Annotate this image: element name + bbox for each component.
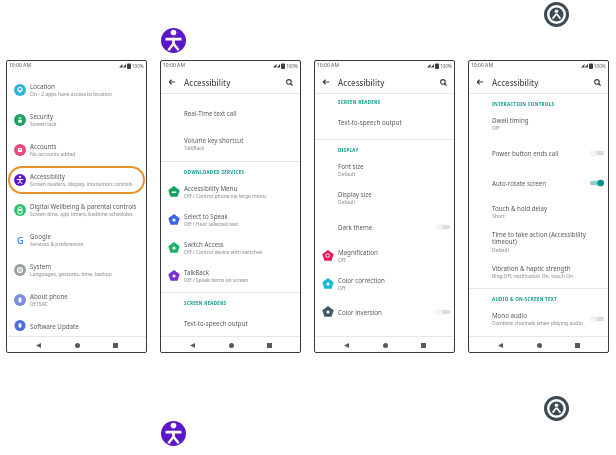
button[interactable]: Touch & hold delay <box>468 198 609 226</box>
button[interactable]: Accessibility <box>161 28 186 53</box>
staticText: 100% <box>132 63 144 69</box>
staticText: TalkBack <box>184 145 205 152</box>
button[interactable]: Mono audio <box>468 305 609 333</box>
staticText: Dark theme <box>338 223 373 231</box>
button[interactable]: Time to take action (Accessibility timeo… <box>468 226 609 258</box>
staticText: Location <box>30 82 55 90</box>
button[interactable]: Back <box>493 338 507 352</box>
button[interactable]: Accessibility <box>544 2 569 27</box>
button[interactable]: Back <box>473 75 487 89</box>
button[interactable]: Select to Speak <box>160 206 301 234</box>
staticText: G <box>17 234 24 246</box>
button[interactable]: TalkBack <box>160 262 301 290</box>
button[interactable]: Software Update <box>6 315 147 336</box>
button[interactable]: Search <box>590 75 604 89</box>
staticText: SCREEN READERS <box>338 99 455 105</box>
button[interactable]: Accounts <box>6 135 147 165</box>
staticText: Accessibility Menu <box>184 184 238 192</box>
button[interactable]: About phone <box>6 285 147 315</box>
staticText: Magnification <box>338 248 378 256</box>
staticText: Real-Time text call <box>184 109 237 117</box>
button[interactable]: Home <box>70 338 84 352</box>
button[interactable]: Location <box>6 75 147 105</box>
staticText: Off / Control phone via large menu <box>184 193 266 200</box>
button[interactable]: Accessibility <box>6 165 147 195</box>
staticText: Accessibility <box>184 77 231 88</box>
staticText: Short <box>492 213 505 220</box>
button[interactable]: G <box>6 225 147 255</box>
staticText: Services & preferences <box>30 241 84 248</box>
button[interactable]: Vibration & haptic strength <box>468 258 609 286</box>
button[interactable]: Search <box>282 75 296 89</box>
staticText: Off <box>492 125 500 132</box>
button[interactable]: Recents <box>416 338 430 352</box>
staticText: Mono audio <box>492 311 527 319</box>
staticText: Screen readers, display, interaction con… <box>30 181 133 188</box>
staticText: 0315AC <box>30 301 48 308</box>
button[interactable]: Back <box>319 75 333 89</box>
button[interactable]: Magnification <box>314 242 455 270</box>
button[interactable]: Home <box>378 338 392 352</box>
button[interactable]: Text-to-speech output <box>160 309 301 336</box>
button[interactable]: Back <box>31 338 45 352</box>
button[interactable]: Digital Wellbeing & parental controls <box>6 195 147 225</box>
button[interactable]: Back <box>185 338 199 352</box>
button[interactable]: Recents <box>262 338 276 352</box>
staticText: 100% <box>286 63 298 69</box>
button[interactable]: Home <box>224 338 238 352</box>
staticText: INTERACTION CONTROLS <box>492 101 609 107</box>
staticText: Time to take action (Accessibility timeo… <box>492 230 604 246</box>
staticText: 10:00 AM <box>471 62 493 69</box>
button[interactable]: Accessibility <box>544 396 569 421</box>
button[interactable]: Auto-rotate screen <box>468 168 609 198</box>
button[interactable]: Recents <box>570 338 584 352</box>
staticText: TalkBack <box>184 268 210 276</box>
staticText: Accessibility <box>492 77 539 88</box>
button[interactable]: Color inversion <box>314 298 455 326</box>
button[interactable]: Volume key shortcut <box>160 129 301 159</box>
staticText: Ring Off, notification On, touch On <box>492 273 574 280</box>
staticText: No accounts added <box>30 151 76 158</box>
staticText: 100% <box>440 63 452 69</box>
button[interactable]: Real-Time text call <box>160 97 301 129</box>
button[interactable]: Home <box>532 338 546 352</box>
button[interactable]: Switch Access <box>160 234 301 262</box>
staticText: Vibration & haptic strength <box>492 264 571 272</box>
staticText: DOWNLOADED SERVICES <box>184 169 301 175</box>
staticText: Software Update <box>30 322 79 330</box>
staticText: Font size <box>338 162 364 170</box>
staticText: 100% <box>594 63 606 69</box>
button[interactable]: System <box>6 255 147 285</box>
staticText: Auto-rotate screen <box>492 179 547 187</box>
staticText: About phone <box>30 292 68 300</box>
button[interactable]: Font size <box>314 156 455 184</box>
button[interactable]: Search <box>436 75 450 89</box>
staticText: Off / Speak items on screen <box>184 277 249 284</box>
button[interactable]: Accessibility <box>161 421 186 446</box>
button[interactable]: Accessibility Menu <box>160 178 301 206</box>
staticText: Off <box>338 285 346 292</box>
button[interactable]: Security <box>6 105 147 135</box>
staticText: AUDIO & ON-SCREEN TEXT <box>492 296 609 302</box>
button[interactable]: Power button ends call <box>468 138 609 168</box>
staticText: Combine channels when playing audio <box>492 320 583 327</box>
staticText: Languages, gestures, time, backup <box>30 271 112 278</box>
button[interactable]: Recents <box>108 338 122 352</box>
staticText: System <box>30 262 52 270</box>
button[interactable]: Back <box>339 338 353 352</box>
staticText: Select to Speak <box>184 212 228 220</box>
button[interactable]: Large mouse pointer <box>314 326 455 336</box>
button[interactable]: Display size <box>314 184 455 212</box>
button[interactable]: Back <box>165 75 179 89</box>
staticText: Dwell timing <box>492 116 529 124</box>
staticText: Screen lock <box>30 121 57 128</box>
staticText: Google <box>30 232 51 240</box>
button[interactable]: Dark theme <box>314 212 455 242</box>
staticText: DISPLAY <box>338 147 455 153</box>
button[interactable]: Dwell timing <box>468 110 609 138</box>
staticText: Default <box>492 247 510 254</box>
staticText: Touch & hold delay <box>492 204 548 212</box>
staticText: Screen time, app timers, bedtime schedul… <box>30 211 133 218</box>
button[interactable]: Text-to-speech output <box>314 108 455 136</box>
button[interactable]: Color correction <box>314 270 455 298</box>
